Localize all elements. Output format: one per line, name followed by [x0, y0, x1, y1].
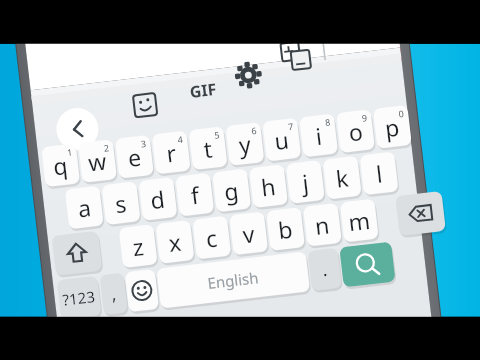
other: Gboard keyboard demo	[0, 0, 480, 360]
button[interactable]	[0, 0, 480, 360]
